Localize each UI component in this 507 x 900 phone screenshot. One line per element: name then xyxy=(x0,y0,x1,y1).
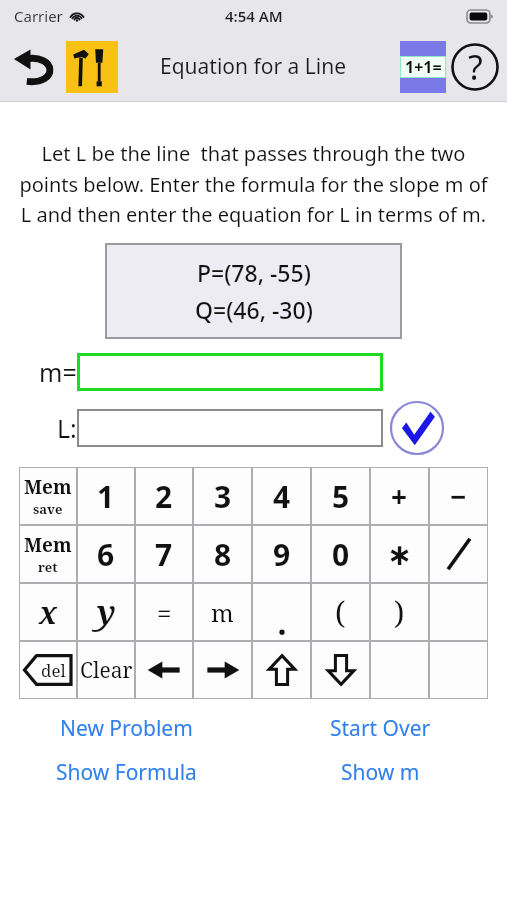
button[interactable]: Back xyxy=(10,41,62,93)
staticText: Clear xyxy=(80,656,133,685)
staticText: 2 xyxy=(155,476,173,517)
staticText: m= xyxy=(39,355,77,389)
button[interactable]: 9 xyxy=(252,525,311,583)
staticText: 1 xyxy=(97,476,115,517)
button[interactable]: 2 xyxy=(135,467,193,525)
button[interactable] xyxy=(193,641,252,699)
staticText: y xyxy=(97,590,116,634)
button[interactable]: Clear xyxy=(77,641,135,699)
staticText: New Problem xyxy=(60,714,193,743)
staticText: . xyxy=(277,599,287,645)
button[interactable]: ∗ xyxy=(370,525,429,583)
staticText: ret xyxy=(38,558,58,576)
button[interactable]: Help xyxy=(449,41,501,93)
button[interactable]: 6 xyxy=(77,525,135,583)
button[interactable]: Mem xyxy=(19,525,77,583)
staticText: P=(78, -55) xyxy=(197,257,311,288)
staticText: ∗ xyxy=(387,537,413,572)
staticText: 6 xyxy=(97,534,115,575)
button[interactable]: ( xyxy=(311,583,370,641)
button[interactable] xyxy=(429,525,488,583)
button[interactable]: ) xyxy=(370,583,429,641)
staticText: 1+1= xyxy=(405,56,442,78)
button[interactable]: x xyxy=(19,583,77,641)
staticText: 9 xyxy=(273,534,291,575)
button[interactable]: Show m xyxy=(253,757,507,787)
button[interactable]: Mem xyxy=(19,467,77,525)
button[interactable]: Check answer xyxy=(388,399,446,457)
button[interactable]: 1 xyxy=(77,467,135,525)
staticText: Show Formula xyxy=(56,758,197,787)
staticText: 8 xyxy=(214,534,232,575)
button[interactable]: + xyxy=(370,467,429,525)
staticText: = xyxy=(157,595,172,630)
button[interactable]: 7 xyxy=(135,525,193,583)
button[interactable]: 5 xyxy=(311,467,370,525)
staticText: ( xyxy=(335,592,346,633)
staticText: Mem xyxy=(24,532,72,558)
staticText: ? xyxy=(468,44,483,90)
staticText: Let L be the line that passes through th… xyxy=(14,140,493,227)
staticText: 7 xyxy=(155,534,173,575)
staticText: L: xyxy=(57,411,77,445)
button[interactable] xyxy=(311,641,370,699)
button[interactable]: − xyxy=(429,467,488,525)
staticText: Mem xyxy=(24,474,72,500)
staticText: + xyxy=(391,477,408,515)
button[interactable]: Equation input xyxy=(77,409,383,447)
staticText: m xyxy=(211,596,234,629)
staticText: del xyxy=(41,659,66,682)
staticText: save xyxy=(33,500,63,518)
button[interactable]: = xyxy=(135,583,193,641)
staticText: ) xyxy=(394,592,405,633)
staticText: 4:54 AM xyxy=(225,6,283,26)
button[interactable]: y xyxy=(77,583,135,641)
button[interactable]: 3 xyxy=(193,467,252,525)
button[interactable] xyxy=(135,641,193,699)
staticText: 5 xyxy=(332,476,350,517)
button[interactable]: Calculator xyxy=(400,41,446,93)
button[interactable]: 0 xyxy=(311,525,370,583)
staticText: 4 xyxy=(273,476,291,517)
button[interactable]: del xyxy=(19,641,77,699)
button[interactable] xyxy=(252,641,311,699)
button[interactable]: m xyxy=(193,583,252,641)
staticText: Start Over xyxy=(330,714,431,743)
button[interactable]: 8 xyxy=(193,525,252,583)
staticText: Show m xyxy=(341,758,420,787)
staticText: x xyxy=(39,592,58,633)
button[interactable]: Start Over xyxy=(253,713,507,743)
button[interactable]: Show Formula xyxy=(0,757,253,787)
staticText: Equation for a Line xyxy=(160,52,347,81)
button[interactable]: Tools xyxy=(66,41,118,93)
button[interactable]: . xyxy=(252,583,311,641)
staticText: 3 xyxy=(214,476,232,517)
staticText: Q=(46, -30) xyxy=(195,294,313,325)
staticText: 0 xyxy=(332,534,350,575)
button[interactable]: New Problem xyxy=(0,713,253,743)
button[interactable]: 4 xyxy=(252,467,311,525)
staticText: Carrier xyxy=(14,6,63,26)
staticText: − xyxy=(450,477,467,515)
button[interactable]: Slope input xyxy=(77,353,383,391)
